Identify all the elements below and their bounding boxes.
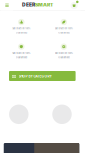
staticText: Satisfaction 100% — [55, 52, 73, 54]
button[interactable]: Featured banner — [4, 143, 79, 153]
staticText: Guaranteed — [16, 31, 27, 34]
button[interactable]: SHOP BY CATEGORY — [9, 71, 76, 81]
staticText: Guaranteed — [58, 31, 69, 34]
staticText: Satisfaction 100% — [12, 27, 30, 30]
staticText: Satisfaction 100% — [12, 52, 30, 54]
button[interactable]: Category 2 — [52, 104, 72, 124]
staticText: Guaranteed — [58, 56, 69, 59]
staticText: DEER — [22, 2, 35, 8]
button[interactable]: Cart — [70, 0, 81, 10]
staticText: Guaranteed — [16, 56, 27, 59]
staticText: SMART — [35, 2, 53, 8]
button[interactable]: Menu — [1, 0, 13, 10]
staticText: SHOP BY CATEGORY — [18, 74, 51, 78]
button[interactable]: Category 1 — [9, 104, 29, 124]
staticText: Satisfaction 100% — [55, 27, 73, 30]
